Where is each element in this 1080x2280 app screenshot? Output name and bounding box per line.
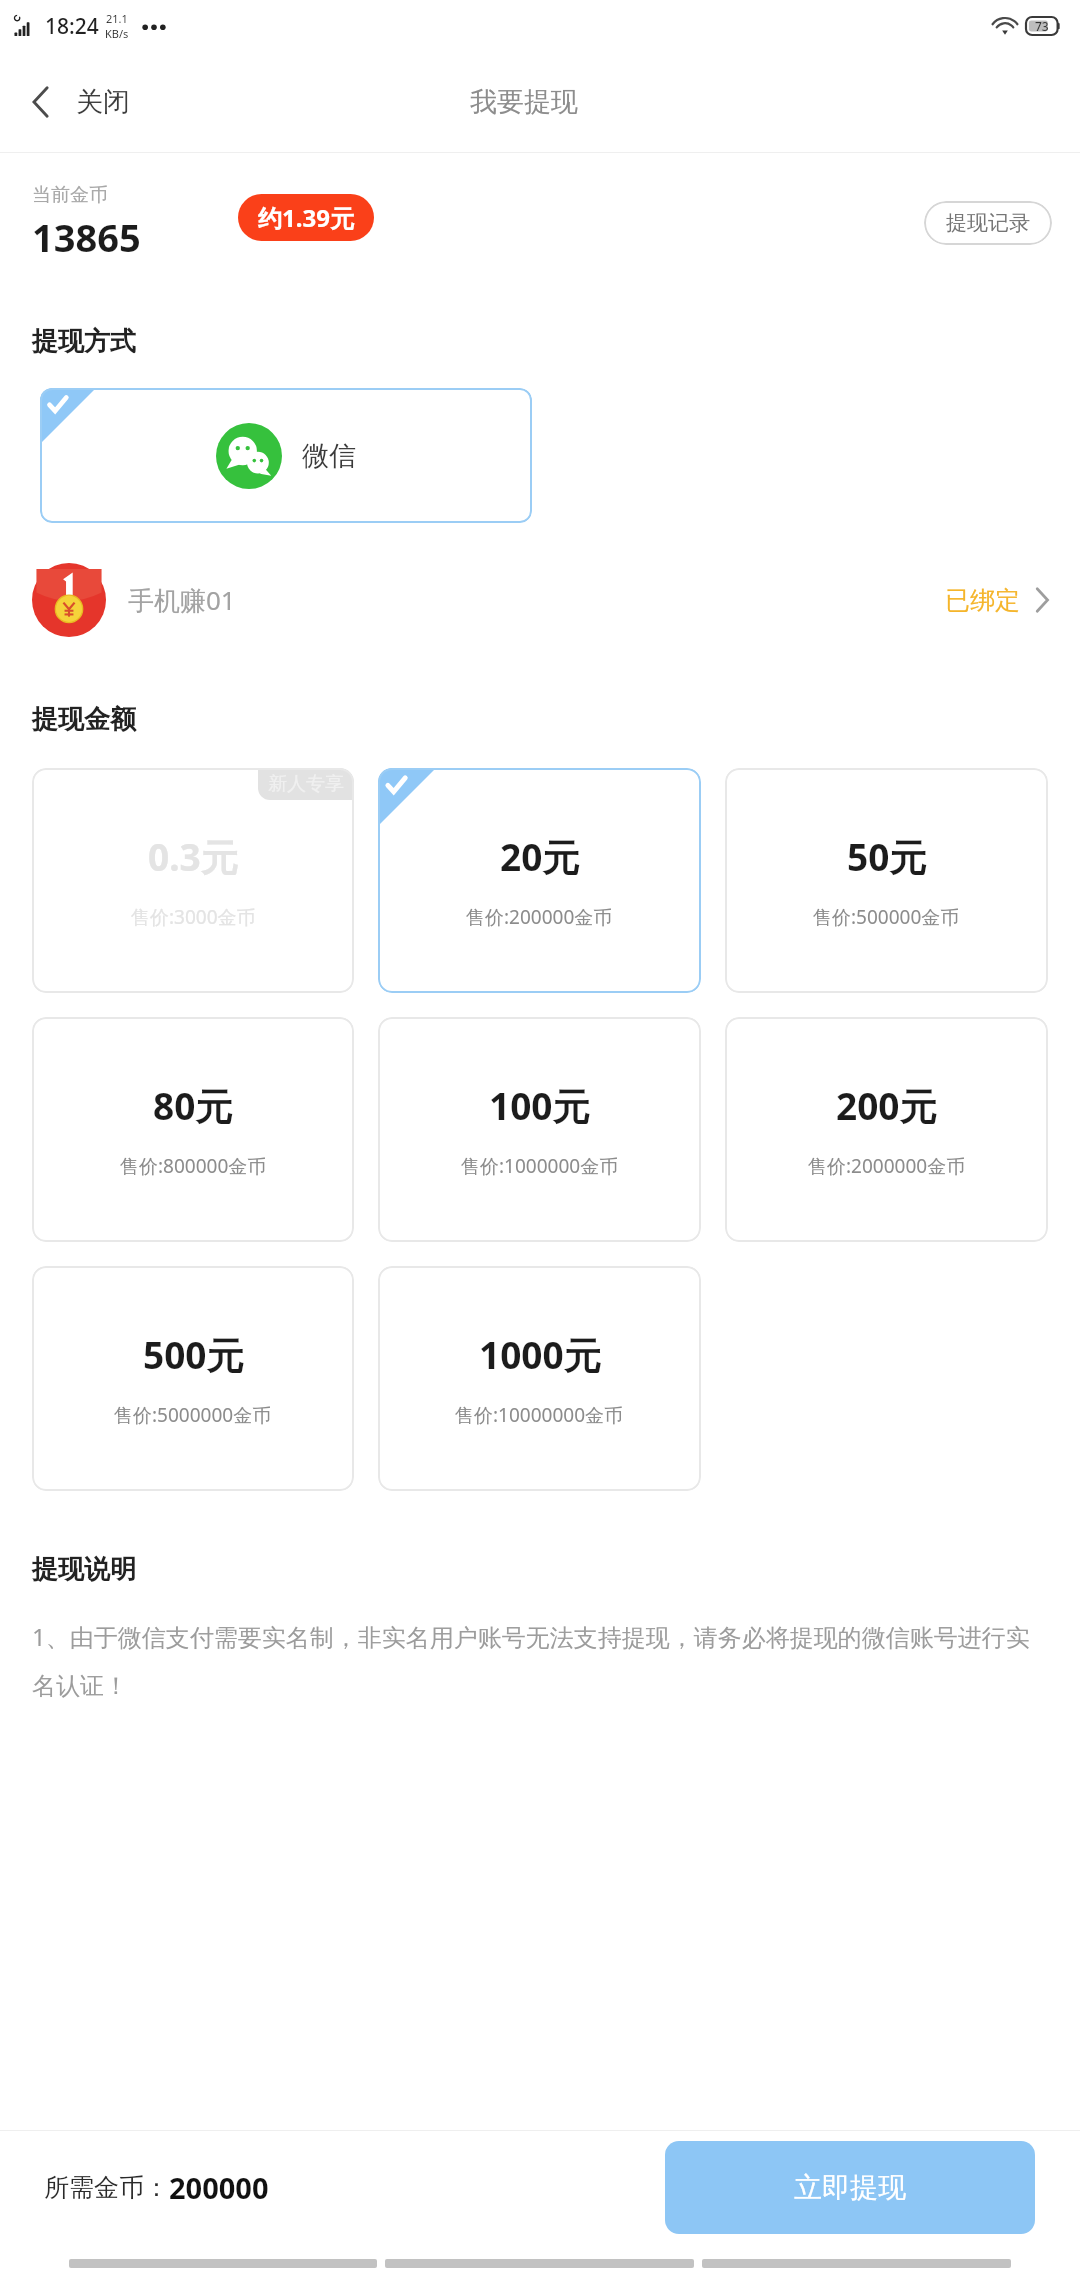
button[interactable]: 80元 <box>32 1017 354 1242</box>
button[interactable]: 20元 <box>378 768 701 993</box>
staticText: 当前金币 <box>32 183 108 207</box>
staticText: 18:24 <box>45 12 99 41</box>
staticText: 提现金额 <box>32 703 136 736</box>
button[interactable]: 50元 <box>725 768 1048 993</box>
staticText: 微信 <box>302 439 356 473</box>
button[interactable]: 约1.39元 <box>238 194 374 241</box>
staticText: 提现说明 <box>32 1553 136 1586</box>
staticText: 提现方式 <box>32 325 136 358</box>
staticText: 我要提现 <box>470 85 578 119</box>
staticText: 200元 <box>836 1080 937 1131</box>
staticText: 新人专享 <box>268 772 344 796</box>
staticText: 关闭 <box>76 85 130 119</box>
staticText: 售价:10000000金币 <box>455 1402 624 1428</box>
staticText: 0.3元 <box>148 831 238 882</box>
button: 0.3元 <box>32 768 354 993</box>
button[interactable]: 手机赚01 <box>0 557 1080 643</box>
staticText: 售价:200000金币 <box>466 904 613 930</box>
button[interactable]: 提现记录 <box>924 201 1052 245</box>
staticText: 500元 <box>143 1329 244 1380</box>
staticText: 售价:3000金币 <box>131 904 256 930</box>
button[interactable]: 100元 <box>378 1017 701 1242</box>
staticText: 立即提现 <box>794 2170 906 2205</box>
staticText: 售价:2000000金币 <box>808 1153 966 1179</box>
staticText: 售价:500000金币 <box>813 904 960 930</box>
staticText: 20元 <box>500 831 580 882</box>
staticText: 1、由于微信支付需要实名制，非实名用户账号无法支持提现，请务必将提现的微信账号进… <box>32 1620 1048 1701</box>
staticText: 提现记录 <box>946 210 1030 236</box>
staticText: 已绑定 <box>945 585 1020 616</box>
staticText: 73 <box>1035 18 1049 34</box>
staticText: 100元 <box>489 1080 590 1131</box>
staticText: 售价:1000000金币 <box>461 1153 619 1179</box>
button[interactable]: 1000元 <box>378 1266 701 1491</box>
other: Back <box>30 85 52 119</box>
staticText: 售价:800000金币 <box>120 1153 267 1179</box>
staticText: 21.1 <box>106 11 128 26</box>
staticText: 50元 <box>847 831 927 882</box>
staticText: KB/s <box>105 26 129 41</box>
button[interactable]: Back <box>0 77 146 127</box>
staticText: 200000 <box>169 2168 269 2207</box>
staticText: 80元 <box>153 1080 233 1131</box>
staticText: 约1.39元 <box>258 201 354 234</box>
button[interactable]: 立即提现 <box>665 2141 1035 2234</box>
button[interactable]: 500元 <box>32 1266 354 1491</box>
button[interactable]: 微信 <box>40 388 532 523</box>
staticText: 手机赚01 <box>128 582 236 618</box>
staticText: 1000元 <box>479 1329 601 1380</box>
button[interactable]: 200元 <box>725 1017 1048 1242</box>
staticText: 售价:5000000金币 <box>114 1402 272 1428</box>
staticText: 13865 <box>32 211 141 263</box>
staticText: 所需金币： <box>44 2172 169 2203</box>
